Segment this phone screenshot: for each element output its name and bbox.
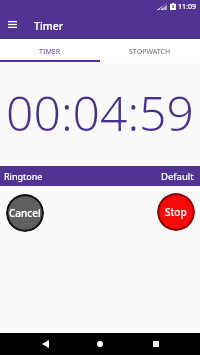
staticText: Cancel: [9, 206, 41, 220]
staticText: Timer: [34, 19, 64, 33]
staticText: Stop: [165, 205, 187, 219]
button[interactable]: Home: [89, 333, 111, 355]
button[interactable]: TIMER: [0, 39, 100, 63]
button[interactable]: Ringtone: [0, 166, 200, 186]
button[interactable]: Open navigation menu: [0, 12, 25, 37]
button[interactable]: Cancel: [6, 194, 44, 232]
staticText: STOPWATCH: [129, 47, 171, 57]
staticText: 11:09: [178, 2, 196, 12]
staticText: Ringtone: [4, 170, 43, 182]
button[interactable]: STOPWATCH: [100, 39, 200, 63]
staticText: TIMER: [39, 47, 61, 57]
staticText: Default: [161, 170, 194, 183]
staticText: 00:04:59: [6, 80, 194, 145]
button[interactable]: Stop: [157, 193, 195, 231]
button[interactable]: Back: [34, 333, 56, 355]
button[interactable]: Recent apps: [145, 333, 167, 355]
